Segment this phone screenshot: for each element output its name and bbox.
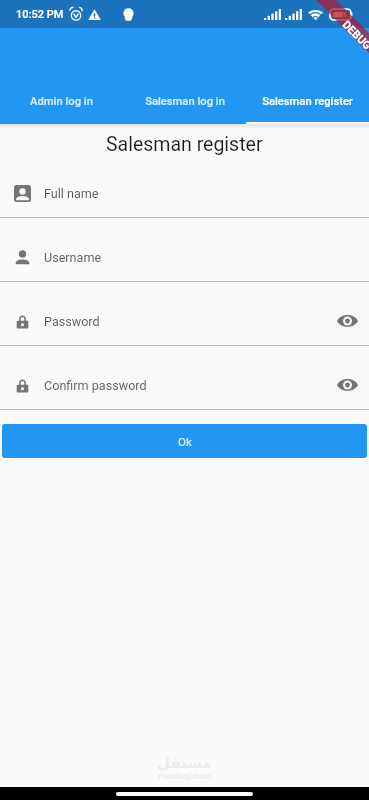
button[interactable]: Salesman log in: [123, 80, 246, 124]
button[interactable]: Full name: [0, 169, 369, 217]
staticText: Salesman register: [106, 133, 263, 156]
button[interactable]: Admin log in: [0, 80, 123, 124]
button[interactable]: Confirm password: [0, 361, 369, 409]
staticText: Salesman register: [262, 95, 353, 108]
staticText: DEBUG: [340, 18, 369, 53]
staticText: 10:52 PM: [16, 8, 64, 21]
staticText: Confirm password: [44, 378, 147, 393]
staticText: Ok: [178, 435, 192, 448]
button[interactable]: Username: [0, 233, 369, 281]
button[interactable]: Password: [0, 297, 369, 345]
staticText: مستقل: [157, 754, 212, 771]
staticText: 85: [334, 11, 343, 19]
staticText: Username: [44, 250, 102, 265]
button[interactable]: Salesman register: [246, 80, 369, 124]
button[interactable]: Toggle password visibility: [328, 366, 366, 404]
staticText: Password: [44, 314, 100, 329]
staticText: Salesman log in: [145, 95, 225, 108]
staticText: Admin log in: [30, 95, 93, 108]
staticText: mostaql.com: [158, 771, 212, 782]
button[interactable]: Toggle password visibility: [328, 302, 366, 340]
button[interactable]: Ok: [2, 424, 367, 458]
staticText: Full name: [44, 186, 99, 201]
